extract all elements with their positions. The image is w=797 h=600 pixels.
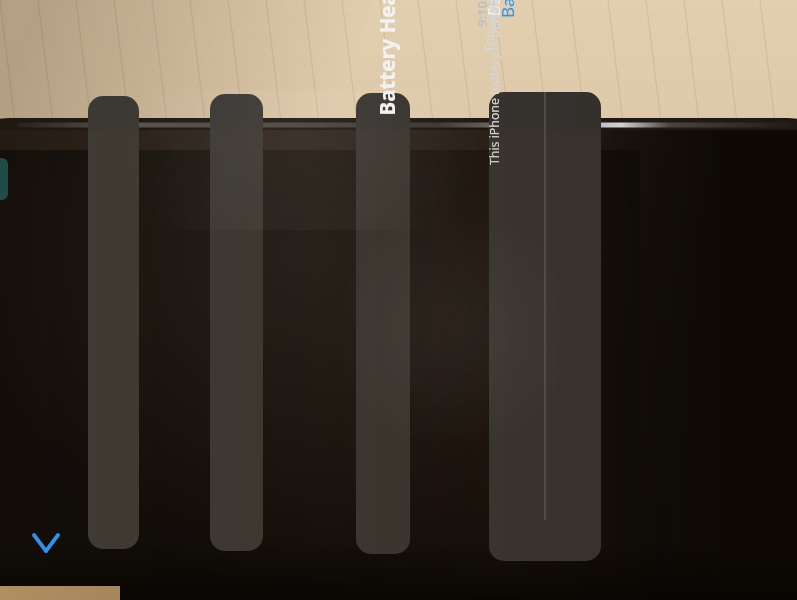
staticText: battery's capacity. Learn more… <box>436 385 453 569</box>
button[interactable]: Manufacture Date row <box>489 92 545 561</box>
button[interactable]: Back to Battery <box>26 420 70 570</box>
staticText: This iPhone battery is performing as exp… <box>142 196 159 503</box>
button[interactable]: First Use row <box>545 92 601 561</box>
button[interactable]: Cycle Count row <box>356 93 410 554</box>
staticText: was new. Lower capacity may result in fe… <box>283 196 300 503</box>
button[interactable]: Battery Health row <box>88 96 139 549</box>
staticText: This is the number of times iPhone has u… <box>418 241 435 527</box>
staticText: This is a measure of battery capacity re… <box>265 181 282 498</box>
button[interactable]: Maximum Capacity row <box>210 94 263 551</box>
